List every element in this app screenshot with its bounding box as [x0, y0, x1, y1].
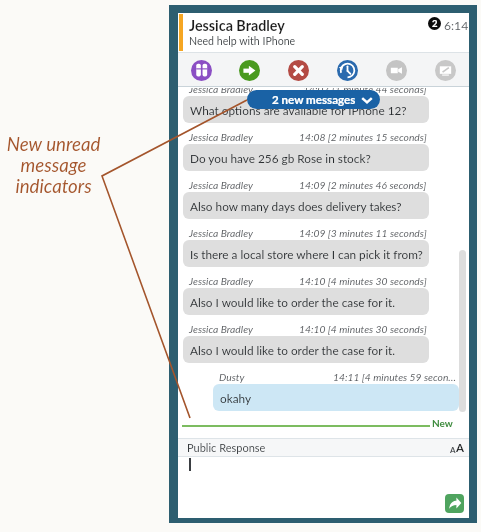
staticText: Also I would like to order the case for … [190, 295, 396, 309]
staticText: A [456, 441, 464, 455]
button[interactable]: Text size [450, 441, 464, 455]
staticText: 6:14 [444, 18, 469, 33]
staticText: A [450, 445, 456, 455]
staticText: Public Response [187, 441, 266, 454]
staticText: 2 [432, 18, 438, 29]
staticText: 14:10 [4 minutes 30 seconds] [299, 323, 427, 335]
staticText: Jessica Bradley [189, 275, 253, 287]
staticText: Jessica Bradley [189, 323, 253, 335]
staticText: 14:09 [3 minutes 11 seconds] [299, 227, 427, 239]
button[interactable]: Screen share [435, 60, 456, 81]
button[interactable]: Dusty [213, 371, 459, 411]
staticText: Need help with IPhone [189, 35, 296, 48]
button[interactable]: Hold [191, 60, 212, 81]
button[interactable]: Video call [386, 60, 407, 81]
button[interactable]: Jessica Bradley [183, 131, 429, 171]
button[interactable]: Send [445, 494, 464, 513]
staticText: New unread message indicators [5, 133, 102, 197]
button[interactable]: 2 new messages [247, 90, 380, 109]
button[interactable]: Jessica Bradley [183, 323, 429, 363]
staticText: 2 new messages [272, 93, 356, 107]
button[interactable]: Jessica Bradley [183, 179, 429, 219]
staticText: Jessica Bradley [189, 131, 253, 143]
staticText: Also how many days does delivery takes? [190, 199, 402, 213]
staticText: 14:11 [4 minutes 59 secon… [333, 371, 457, 383]
button[interactable]: Transfer [239, 60, 260, 81]
staticText: 14:08 [2 minutes 15 seconds] [299, 131, 427, 143]
staticText: 14:07 [1 minute 44 seconds] [303, 88, 427, 95]
button[interactable]: History [337, 60, 358, 81]
staticText: Jessica Bradley [189, 17, 285, 34]
button[interactable]: Jessica Bradley [183, 275, 429, 315]
button[interactable]: Jessica Bradley [183, 88, 429, 123]
staticText: Also I would like to order the case for … [190, 343, 396, 357]
staticText: okahy [220, 391, 252, 405]
staticText: Dusty [219, 371, 245, 383]
staticText: 14:10 [4 minutes 30 seconds] [299, 275, 427, 287]
staticText: Jessica Bradley [189, 88, 253, 95]
staticText: Jessica Bradley [189, 227, 253, 239]
staticText: 14:09 [2 minutes 46 seconds] [299, 179, 427, 191]
staticText: Jessica Bradley [189, 179, 253, 191]
staticText: New [432, 417, 453, 429]
staticText: Do you have 256 gb Rose in stock? [190, 151, 371, 165]
staticText: Is there a local store where I can pick … [190, 247, 423, 261]
button[interactable]: End chat [288, 60, 309, 81]
button[interactable]: Jessica Bradley [183, 227, 429, 267]
staticText: What options are available for IPhone 12… [190, 103, 407, 117]
